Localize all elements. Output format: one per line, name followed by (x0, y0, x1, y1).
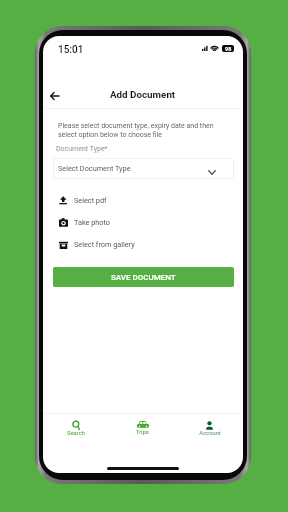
button[interactable]: Select from gallery (43, 233, 243, 255)
staticText: Take photo (74, 218, 110, 227)
staticText: Add Document (110, 89, 176, 100)
staticText: 98 (225, 46, 232, 52)
button[interactable]: Account (176, 414, 243, 444)
staticText: Select from gallery (74, 240, 135, 249)
button[interactable]: Take photo (43, 211, 243, 233)
staticText: Account (199, 430, 221, 437)
button[interactable]: SAVE DOCUMENT (53, 267, 234, 287)
button[interactable]: Select pdf (43, 189, 243, 211)
button[interactable]: Select Document Type (53, 158, 234, 179)
staticText: Search (67, 430, 85, 437)
staticText: Trips (136, 429, 149, 436)
button[interactable]: Back (45, 87, 63, 105)
button[interactable]: Trips (109, 414, 176, 444)
staticText: Select pdf (74, 196, 107, 205)
staticText: Select Document Type (58, 164, 131, 173)
staticText: Document Type* (56, 145, 108, 153)
staticText: SAVE DOCUMENT (111, 273, 176, 282)
staticText: Please select document type, expiry date… (58, 122, 214, 139)
button[interactable]: Search (43, 414, 109, 444)
staticText: 15:01 (58, 44, 84, 56)
